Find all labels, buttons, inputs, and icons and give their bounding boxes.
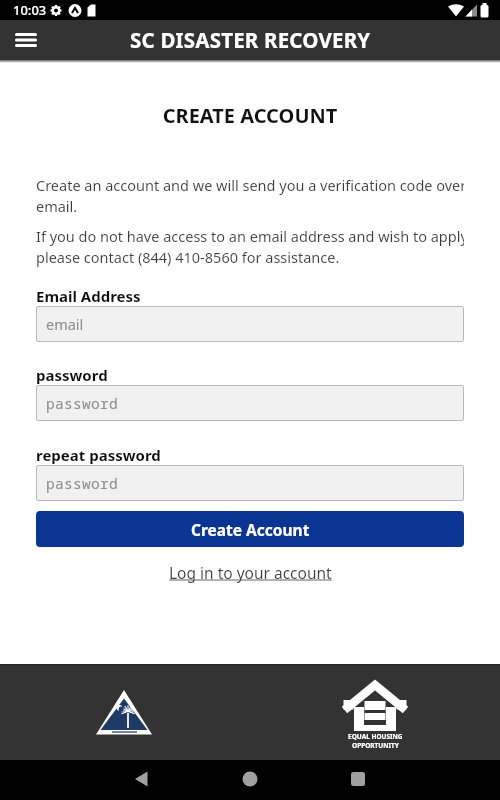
button[interactable] xyxy=(166,760,333,800)
button[interactable]: password xyxy=(36,465,464,501)
button[interactable]: Create Account xyxy=(36,511,464,547)
button[interactable] xyxy=(0,760,166,800)
staticText: password xyxy=(46,393,118,413)
staticText: 10:03 xyxy=(13,1,47,19)
staticText: Create Account xyxy=(191,519,310,540)
staticText: repeat password xyxy=(36,445,161,465)
button[interactable] xyxy=(10,24,42,56)
staticText: Email Address xyxy=(36,286,141,306)
button[interactable]: Log in to your account xyxy=(169,562,332,583)
staticText: CREATE ACCOUNT xyxy=(36,102,464,129)
staticText: EQUAL HOUSING xyxy=(348,732,403,741)
button[interactable] xyxy=(333,760,500,800)
staticText: SC DISASTER RECOVERY xyxy=(130,26,371,54)
staticText: password xyxy=(36,365,108,385)
staticText: password xyxy=(46,473,118,493)
staticText: email xyxy=(46,314,84,334)
staticText: If you do not have access to an email ad… xyxy=(36,226,464,268)
staticText: OPPORTUNITY xyxy=(352,741,399,750)
staticText: Create an account and we will send you a… xyxy=(36,175,464,217)
button[interactable]: password xyxy=(36,385,464,421)
button[interactable]: email xyxy=(36,306,464,342)
